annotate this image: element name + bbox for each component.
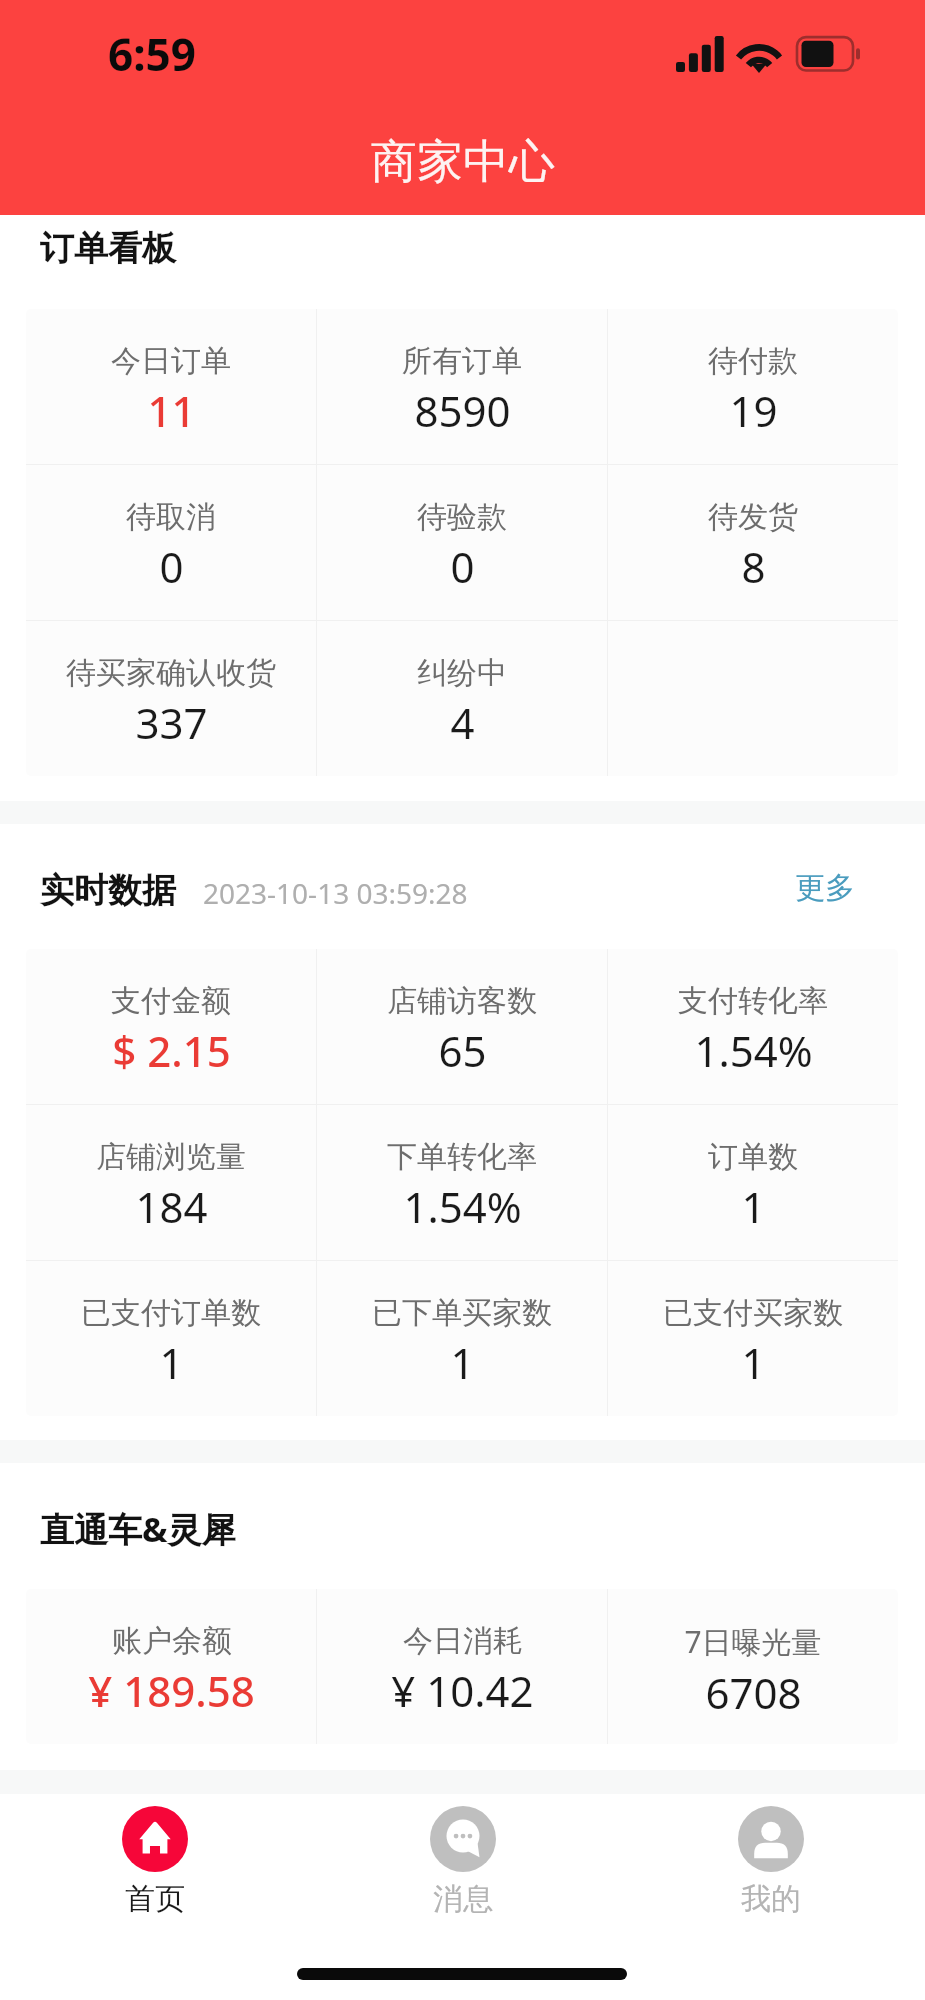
button[interactable]: 今日订单: [26, 309, 316, 464]
staticText: 实时数据: [40, 869, 176, 912]
button[interactable]: 纠纷中: [317, 621, 607, 776]
button[interactable]: 店铺浏览量: [26, 1105, 316, 1260]
staticText: 待付款: [708, 342, 798, 380]
staticText: 所有订单: [402, 342, 522, 380]
staticText: 7日曝光量: [684, 1621, 822, 1662]
staticText: 65: [438, 1022, 487, 1079]
staticText: 我的: [741, 1880, 801, 1918]
button[interactable]: 订单数: [608, 1105, 898, 1260]
button[interactable]: 已支付订单数: [26, 1261, 316, 1416]
button[interactable]: 今日消耗: [317, 1589, 607, 1744]
staticText: 0: [450, 538, 475, 595]
staticText: ¥ 189.58: [88, 1662, 255, 1719]
staticText: 支付金额: [111, 982, 231, 1020]
staticText: 今日订单: [111, 342, 231, 380]
staticText: 待验款: [417, 498, 507, 536]
button[interactable]: 已下单买家数: [317, 1261, 607, 1416]
staticText: 1: [450, 1334, 475, 1391]
staticText: 2023-10-13 03:59:28: [203, 874, 468, 912]
button[interactable]: 待买家确认收货: [26, 621, 316, 776]
staticText: 337: [135, 694, 208, 751]
staticText: 19: [729, 382, 778, 439]
staticText: 待取消: [126, 498, 216, 536]
button[interactable]: 所有订单: [317, 309, 607, 464]
button[interactable]: 支付金额: [26, 949, 316, 1104]
staticText: 待发货: [708, 498, 798, 536]
staticText: 1: [741, 1334, 766, 1391]
staticText: 已支付买家数: [663, 1294, 843, 1332]
staticText: 4: [450, 694, 475, 751]
button[interactable]: 更多: [795, 869, 855, 907]
button[interactable]: Profile: [617, 1806, 925, 2000]
staticText: 6708: [705, 1664, 802, 1721]
staticText: 待买家确认收货: [66, 654, 276, 692]
button[interactable]: 待发货: [608, 465, 898, 620]
staticText: $ 2.15: [112, 1022, 231, 1079]
staticText: 1.54%: [694, 1022, 813, 1079]
button[interactable]: 支付转化率: [608, 949, 898, 1104]
staticText: 店铺访客数: [387, 982, 537, 1020]
staticText: 直通车&灵犀: [40, 1506, 236, 1552]
staticText: 首页: [125, 1880, 185, 1918]
button[interactable]: 已支付买家数: [608, 1261, 898, 1416]
staticText: 支付转化率: [678, 982, 828, 1020]
button[interactable]: 待验款: [317, 465, 607, 620]
staticText: 订单看板: [40, 227, 176, 270]
staticText: 账户余额: [112, 1622, 232, 1660]
staticText: 订单数: [708, 1138, 798, 1176]
staticText: 8590: [414, 382, 511, 439]
staticText: 0: [159, 538, 184, 595]
staticText: 商家中心: [371, 133, 555, 191]
staticText: 已支付订单数: [81, 1294, 261, 1332]
button[interactable]: 账户余额: [26, 1589, 316, 1744]
staticText: 下单转化率: [387, 1138, 537, 1176]
staticText: 已下单买家数: [372, 1294, 552, 1332]
staticText: 6:59: [108, 24, 196, 84]
staticText: 8: [741, 538, 766, 595]
staticText: 今日消耗: [403, 1622, 523, 1660]
button[interactable]: 待付款: [608, 309, 898, 464]
staticText: 店铺浏览量: [96, 1138, 246, 1176]
staticText: ¥ 10.42: [391, 1662, 534, 1719]
staticText: 1: [741, 1178, 766, 1235]
button[interactable]: 7日曝光量: [608, 1589, 898, 1744]
staticText: 1.54%: [403, 1178, 522, 1235]
staticText: 11: [147, 382, 196, 439]
button[interactable]: 待取消: [26, 465, 316, 620]
button[interactable]: 店铺访客数: [317, 949, 607, 1104]
button[interactable]: 下单转化率: [317, 1105, 607, 1260]
staticText: 184: [135, 1178, 208, 1235]
staticText: 消息: [433, 1880, 493, 1918]
staticText: 1: [159, 1334, 184, 1391]
button[interactable]: Messages: [309, 1806, 617, 2000]
button[interactable]: Home: [0, 1806, 309, 2000]
staticText: 纠纷中: [417, 654, 507, 692]
